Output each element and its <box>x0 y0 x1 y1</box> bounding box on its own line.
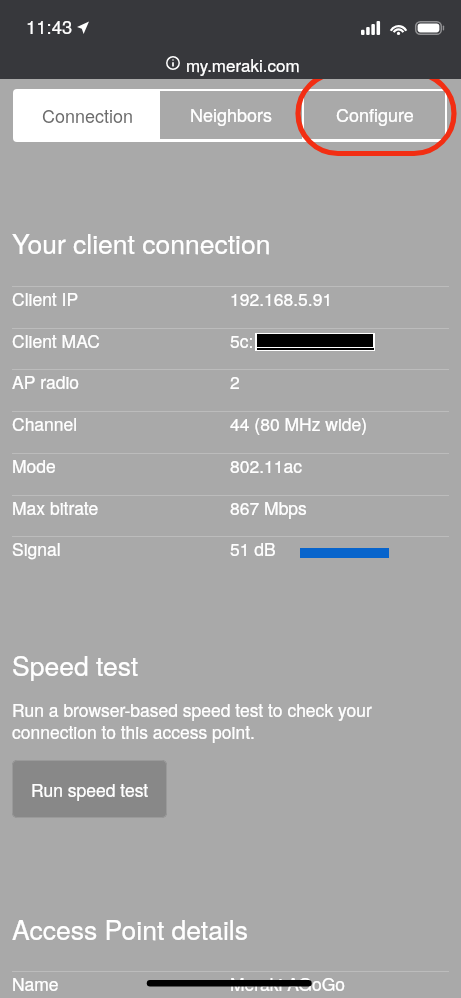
button[interactable]: Signal <box>0 536 461 578</box>
staticText: Signal <box>12 536 61 561</box>
button[interactable]: AP radio <box>0 369 461 411</box>
button[interactable]: Max bitrate <box>0 495 461 537</box>
staticText: Connection <box>42 102 134 128</box>
staticText: Run speed test <box>31 777 149 802</box>
staticText: AP radio <box>12 369 80 394</box>
staticText: 802.11ac <box>230 453 302 478</box>
button[interactable]: Client MAC <box>0 328 461 370</box>
button[interactable]: Mode <box>0 453 461 495</box>
staticText: Max bitrate <box>12 495 99 520</box>
button[interactable]: Connection <box>13 89 159 142</box>
staticText: 51 dB <box>230 536 276 561</box>
button[interactable]: Neighbors <box>160 91 302 139</box>
staticText: Run a browser-based speed test to check … <box>12 697 372 722</box>
staticText: Your client connection <box>12 224 271 262</box>
staticText: Speed test <box>12 646 139 684</box>
staticText: Mode <box>12 453 56 478</box>
staticText: Neighbors <box>190 101 273 127</box>
staticText: Meraki AGoGo <box>230 971 346 996</box>
staticText: my.meraki.com <box>186 52 300 76</box>
staticText: Client IP <box>12 286 79 311</box>
staticText: Client MAC <box>12 328 100 353</box>
staticText: 44 (80 MHz wide) <box>230 411 368 436</box>
staticText: 11:43 <box>26 13 73 39</box>
staticText: Configure <box>336 101 414 127</box>
button[interactable]: Client IP <box>0 286 461 328</box>
staticText: connection to this access point. <box>12 719 255 744</box>
staticText: 2 <box>230 369 240 394</box>
staticText: Name <box>12 971 59 996</box>
button[interactable]: Channel <box>0 411 461 453</box>
staticText: Channel <box>12 411 78 436</box>
button[interactable]: Configure <box>304 91 445 139</box>
button[interactable]: Run speed test <box>12 760 167 818</box>
staticText: 192.168.5.91 <box>230 286 333 311</box>
staticText: Access Point details <box>12 910 248 948</box>
staticText: 5c: <box>230 328 254 353</box>
staticText: 867 Mbps <box>230 495 307 520</box>
